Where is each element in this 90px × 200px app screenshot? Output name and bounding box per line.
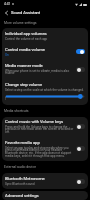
button[interactable]: Change step volume [2, 79, 88, 105]
staticText: Sound Assistant [11, 10, 41, 15]
staticText: Bluetooth Metronome [5, 176, 45, 181]
staticText: 1 [5, 98, 7, 101]
staticText: Sync Bluetooth sound [5, 182, 35, 186]
staticText: Select a step on the scale at which the … [5, 88, 84, 92]
button[interactable]: Navigate up [2, 9, 10, 17]
staticText: Press and hold the Volume keys to change… [5, 125, 74, 134]
staticText: Media shortcuts [4, 109, 29, 113]
button[interactable]: Switch off [76, 67, 85, 72]
staticText: 4:41 [4, 2, 11, 6]
staticText: Favorite media app [5, 140, 40, 145]
button[interactable]: Switch off [76, 146, 85, 151]
button[interactable]: Switch on [76, 49, 85, 54]
button[interactable]: Advanced settings [2, 191, 88, 200]
staticText: Advanced settings [5, 193, 39, 198]
button[interactable]: Switch off [76, 124, 85, 129]
staticText: Control music with Volume keys [5, 119, 64, 124]
staticText: When your phone is set to vibrate, media… [5, 69, 74, 75]
button[interactable]: Control media volume [2, 44, 88, 59]
button[interactable]: Media manner mode [2, 59, 88, 79]
button[interactable]: Individual app volumes [2, 28, 88, 44]
button[interactable]: Favorite media app [2, 136, 88, 161]
staticText: Change step volume [5, 82, 43, 87]
staticText: On [5, 53, 9, 57]
button[interactable]: Bluetooth Metronome [2, 173, 88, 189]
staticText: External audio device [4, 165, 37, 169]
staticText: Individual app volumes [5, 31, 47, 36]
button[interactable]: Control music with Volume keys [2, 117, 88, 136]
button[interactable]: Switch off [76, 179, 85, 184]
staticText: Control media volume [5, 47, 45, 52]
staticText: Select an app to play and stop media whe… [5, 146, 74, 158]
staticText: Control the volume of each app [5, 37, 48, 41]
staticText: More volume settings [4, 21, 37, 25]
staticText: Media manner mode [5, 63, 43, 68]
